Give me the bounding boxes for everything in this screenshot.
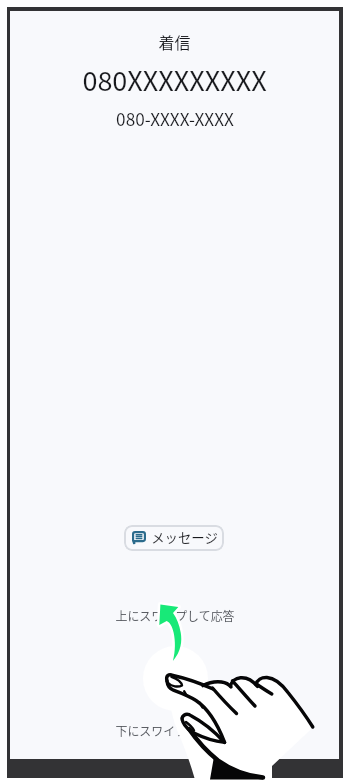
staticText: 080XXXXXXXXX: [82, 60, 267, 99]
button[interactable]: Answer call: [143, 646, 208, 711]
staticText: 着信: [158, 30, 191, 53]
button[interactable]: メッセージ: [124, 525, 224, 551]
staticText: メッセージ: [151, 527, 218, 546]
staticText: 080-XXXX-XXXX: [116, 106, 234, 131]
staticText: 下にスワイプして拒否: [115, 722, 235, 739]
staticText: 上にスワイプして応答: [115, 607, 235, 624]
